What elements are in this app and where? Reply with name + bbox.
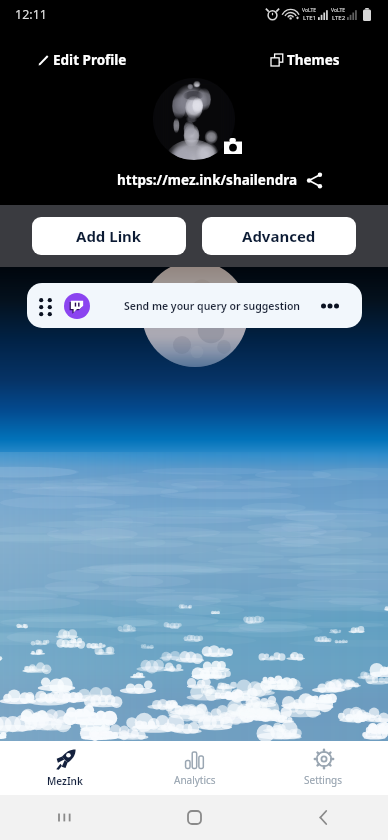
staticText: https://mez.ink/shailendra [117, 171, 298, 189]
staticText: Add Link [76, 226, 142, 246]
button[interactable]: Change photo [223, 136, 243, 156]
button[interactable]: Send me your query or suggestion [27, 283, 362, 328]
button[interactable]: Advanced [202, 217, 356, 255]
button[interactable]: Home [130, 795, 259, 840]
staticText: LTE1 [303, 14, 317, 22]
button[interactable]: More options [321, 283, 362, 328]
button[interactable]: Share [304, 170, 324, 190]
button[interactable]: Back [259, 795, 388, 840]
staticText: MezInk [47, 774, 83, 788]
button[interactable]: Recents [0, 795, 130, 840]
button[interactable]: Edit Profile [38, 51, 127, 69]
staticText: Settings [304, 773, 343, 787]
staticText: Edit Profile [53, 51, 127, 69]
staticText: VoLTE [302, 7, 317, 14]
button[interactable]: MezInk [0, 741, 130, 795]
button[interactable]: Settings [259, 741, 388, 795]
button[interactable]: Profile photo [153, 78, 235, 160]
staticText: LTE2 [332, 14, 346, 22]
staticText: VoLTE [331, 7, 346, 14]
staticText: Analytics [174, 773, 216, 787]
staticText: Send me your query or suggestion [124, 299, 301, 313]
button[interactable]: Themes [271, 51, 340, 69]
button[interactable]: Analytics [130, 741, 259, 795]
staticText: Themes [287, 51, 340, 69]
staticText: 12:11 [15, 6, 47, 23]
button[interactable]: Add Link [32, 217, 186, 255]
staticText: Advanced [242, 226, 316, 246]
